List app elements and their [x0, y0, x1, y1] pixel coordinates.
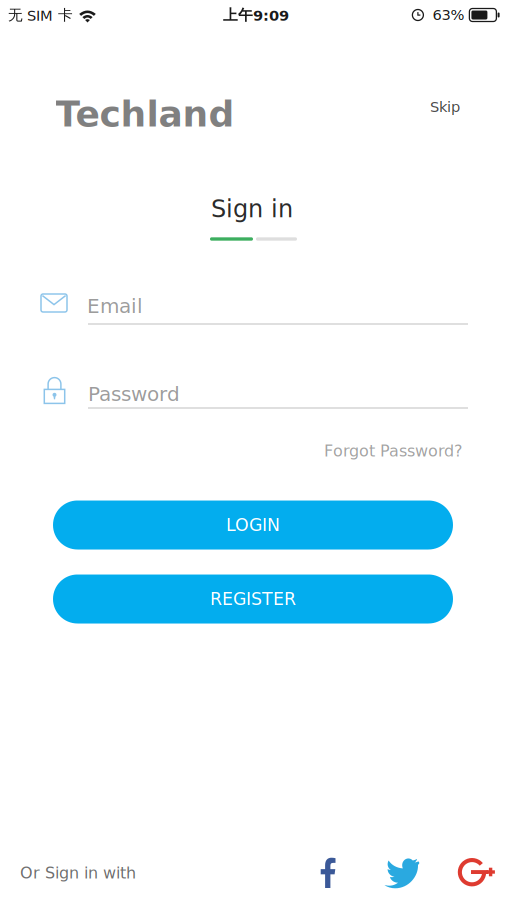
button[interactable]: REGISTER — [53, 574, 453, 623]
button[interactable]: LOGIN — [53, 500, 453, 549]
staticText: Techland — [55, 93, 234, 135]
button[interactable]: Sign in with Twitter — [384, 857, 419, 888]
staticText: LOGIN — [226, 515, 280, 535]
staticText: 无 SIM 卡 — [8, 6, 73, 24]
button[interactable]: Sign in with Google — [457, 857, 497, 888]
staticText: Forgot Password? — [324, 442, 462, 460]
staticText: Email — [87, 294, 143, 318]
button[interactable]: Skip — [416, 87, 474, 127]
button[interactable]: Forgot Password? — [314, 433, 472, 469]
staticText: 63% — [432, 6, 464, 24]
staticText: Sign in — [211, 195, 293, 223]
staticText: REGISTER — [210, 589, 296, 609]
staticText: Skip — [430, 98, 460, 116]
staticText: 上午9:09 — [223, 6, 289, 24]
button[interactable]: Sign in with Facebook — [315, 857, 340, 888]
staticText: Or Sign in with — [20, 864, 136, 882]
staticText: Password — [88, 382, 180, 406]
